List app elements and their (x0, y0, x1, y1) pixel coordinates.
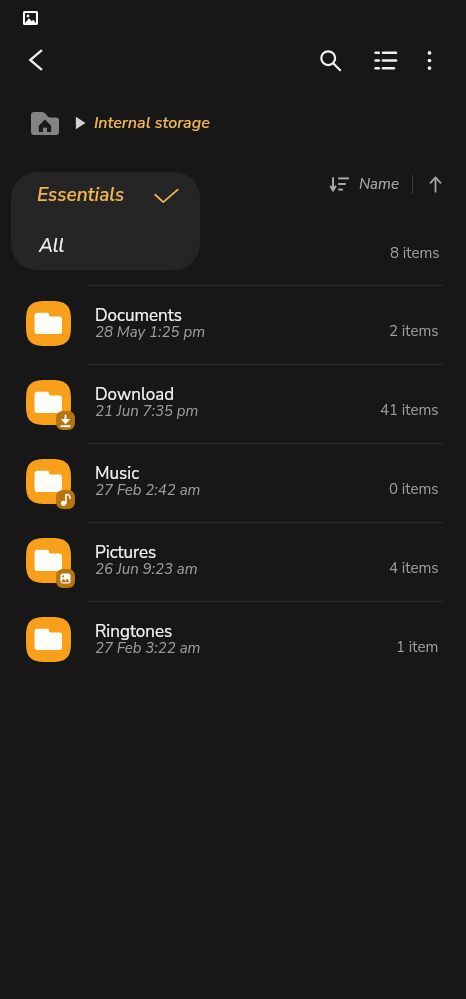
button[interactable]: View as list (363, 38, 408, 83)
staticText: Essentials (37, 182, 125, 208)
staticText: Internal storage (94, 112, 210, 134)
button[interactable]: Essentials (11, 172, 200, 221)
staticText: Music (95, 462, 140, 485)
staticText: Documents (95, 304, 182, 327)
button[interactable]: 8 items (330, 240, 440, 266)
staticText: Ringtones (95, 620, 173, 643)
staticText: Download (95, 383, 175, 406)
staticText: Pictures (95, 541, 157, 564)
staticText: 4 items (389, 558, 439, 578)
staticText: 2 items (389, 321, 439, 341)
staticText: 27 Feb 2:42 am (95, 480, 201, 500)
staticText: 21 Jun 7:35 pm (95, 401, 199, 421)
button[interactable]: Documents (0, 285, 466, 364)
staticText: Name (359, 174, 399, 194)
button[interactable]: Search (308, 38, 353, 83)
button[interactable]: Music (0, 443, 466, 522)
button[interactable]: All (11, 221, 200, 270)
staticText: 0 items (389, 479, 439, 499)
button[interactable]: Internal storage (94, 107, 210, 139)
button[interactable]: Pictures (0, 522, 466, 601)
staticText: 1 item (396, 637, 439, 657)
button[interactable]: Name (330, 174, 399, 194)
button[interactable]: Navigate up (14, 38, 58, 82)
staticText: All (39, 233, 65, 259)
staticText: 41 items (380, 400, 439, 420)
staticText: 27 Feb 3:22 am (95, 638, 201, 658)
button[interactable]: Home folder (31, 105, 71, 141)
staticText: 28 May 1:25 pm (95, 322, 205, 342)
button[interactable]: Download (0, 364, 466, 443)
staticText: 8 items (390, 243, 440, 263)
button[interactable]: Sort order ascending (424, 173, 447, 196)
button[interactable]: Ringtones (0, 601, 466, 680)
staticText: 26 Jun 9:23 am (95, 559, 198, 579)
button[interactable]: More options (407, 38, 452, 83)
